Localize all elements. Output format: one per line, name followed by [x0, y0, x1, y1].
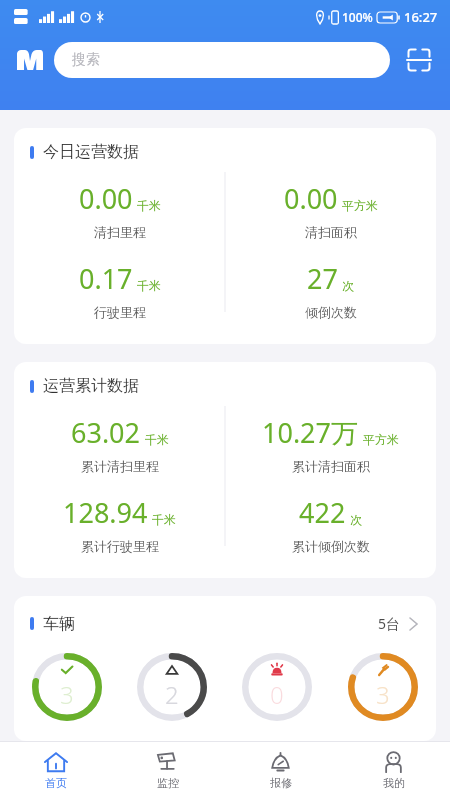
staticText: 行驶里程 [94, 304, 146, 320]
staticText: 平方米 [342, 198, 378, 213]
staticText: 千米 [137, 198, 161, 213]
staticText: 0 [270, 678, 284, 711]
staticText: 千米 [137, 278, 161, 293]
staticText: 422 [299, 494, 346, 531]
staticText: 0.17 [79, 260, 133, 297]
staticText: 报修 [270, 776, 292, 790]
staticText: 次 [350, 512, 362, 527]
staticText: 运营累计数据 [43, 376, 139, 396]
button[interactable]: 报修 [224, 742, 337, 800]
staticText: 搜索 [72, 51, 100, 69]
staticText: 0.00 [284, 180, 338, 217]
staticText: 128.94 [63, 494, 148, 531]
button[interactable]: Scan [400, 41, 438, 79]
staticText: 5台 [378, 614, 401, 633]
staticText: 100% [342, 9, 373, 25]
staticText: 16:27 [404, 8, 438, 26]
staticText: 累计清扫面积 [292, 458, 370, 474]
staticText: 今日运营数据 [43, 142, 139, 162]
staticText: 累计倾倒次数 [292, 538, 370, 554]
staticText: 倾倒次数 [305, 304, 357, 320]
button[interactable]: Logo [12, 42, 48, 78]
staticText: 3 [376, 678, 390, 711]
button[interactable]: 监控 [112, 742, 224, 800]
button[interactable]: 首页 [0, 742, 112, 800]
button[interactable]: 3 [330, 651, 436, 723]
staticText: 0.00 [79, 180, 133, 217]
staticText: 累计清扫里程 [81, 458, 159, 474]
staticText: 3 [60, 678, 74, 711]
staticText: 千米 [152, 512, 176, 527]
button[interactable]: 3 [14, 651, 119, 723]
staticText: 清扫面积 [305, 224, 357, 240]
staticText: 2 [165, 678, 179, 711]
staticText: 我的 [383, 776, 405, 790]
staticText: 63.02 [71, 414, 141, 451]
staticText: 27 [307, 260, 338, 297]
button[interactable]: 5台 [374, 610, 422, 637]
staticText: 车辆 [43, 614, 75, 634]
staticText: 监控 [157, 776, 179, 790]
staticText: 10.27万 [262, 414, 359, 451]
staticText: 千米 [145, 432, 169, 447]
staticText: 平方米 [363, 432, 399, 447]
staticText: 清扫里程 [94, 224, 146, 240]
staticText: 首页 [45, 776, 67, 790]
staticText: 次 [342, 278, 354, 293]
button[interactable]: 今日运营数据 [14, 128, 436, 344]
button[interactable]: 运营累计数据 [14, 362, 436, 578]
button[interactable]: 我的 [337, 742, 450, 800]
button[interactable]: 0 [224, 651, 330, 723]
button[interactable]: 2 [119, 651, 224, 723]
button[interactable]: 搜索 [54, 42, 390, 78]
staticText: 累计行驶里程 [81, 538, 159, 554]
